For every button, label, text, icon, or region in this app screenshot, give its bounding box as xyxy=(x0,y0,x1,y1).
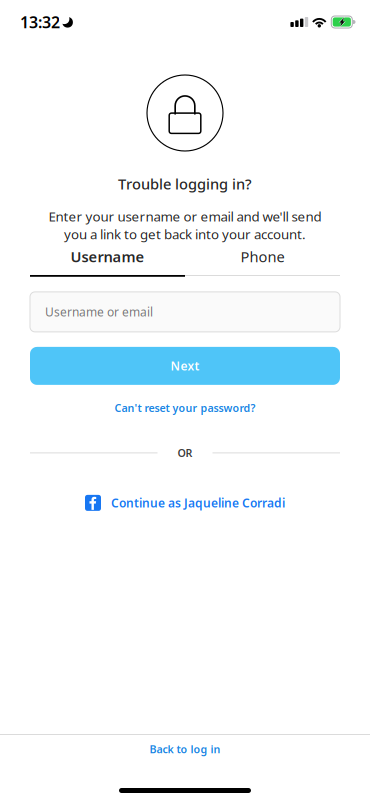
button[interactable]: Phone xyxy=(185,247,340,275)
staticText: 13:32 xyxy=(20,11,60,33)
button[interactable]: Back to log in xyxy=(0,735,370,788)
button[interactable]: Continue as Jaqueline Corradi xyxy=(85,492,285,514)
staticText: Continue as Jaqueline Corradi xyxy=(111,495,285,511)
staticText: Trouble logging in? xyxy=(118,174,252,193)
staticText: Next xyxy=(170,358,199,374)
staticText: Username or email xyxy=(45,304,153,320)
staticText: Back to log in xyxy=(149,742,220,756)
button[interactable]: Username xyxy=(30,247,185,275)
staticText: Username xyxy=(70,247,144,266)
staticText: OR xyxy=(177,446,192,460)
staticText: Enter your username or email and we'll s… xyxy=(48,207,321,225)
staticText: Can't reset your password? xyxy=(114,401,255,415)
button[interactable]: Can't reset your password? xyxy=(114,398,255,418)
button[interactable]: Next xyxy=(30,347,340,385)
staticText: Phone xyxy=(240,247,284,266)
staticText: you a link to get back into your account… xyxy=(64,225,306,243)
